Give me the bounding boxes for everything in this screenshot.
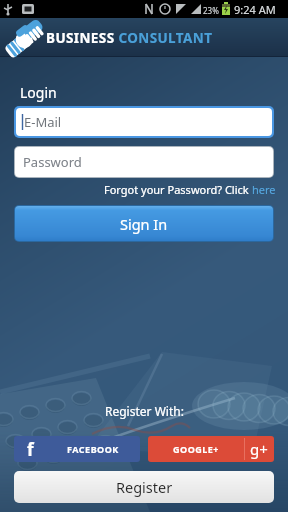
button[interactable]: E-Mail — [16, 108, 272, 136]
staticText: Password — [23, 153, 82, 171]
staticText: f — [27, 438, 34, 461]
staticText: 23% — [203, 5, 219, 16]
button[interactable]: Register — [14, 471, 274, 503]
staticText: Forgot your Password? Click — [104, 182, 252, 197]
button[interactable]: Password — [15, 147, 273, 177]
staticText: 9:24 AM — [234, 2, 276, 17]
button[interactable]: f — [14, 436, 140, 462]
button[interactable]: Sign In — [15, 206, 273, 241]
staticText: Sign In — [120, 214, 168, 234]
staticText: BUSINESS CONSULTANT — [46, 29, 213, 47]
staticText: GOOGLE+ — [173, 443, 219, 455]
staticText: Register With: — [105, 403, 184, 419]
staticText: Register — [116, 477, 173, 497]
button[interactable]: here — [252, 182, 276, 197]
staticText: E-Mail — [24, 113, 62, 131]
staticText: FACEBOOK — [67, 443, 119, 455]
staticText: g+ — [250, 439, 268, 459]
button[interactable]: GOOGLE+ — [148, 436, 274, 462]
staticText: Login — [20, 83, 57, 102]
